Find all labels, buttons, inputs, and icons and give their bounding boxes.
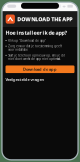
staticText: Veelgestelde vragen (5, 77, 44, 82)
staticText: Klik op “Download de app” (8, 39, 46, 42)
staticText: DOWNLOAD THE APP (17, 16, 72, 23)
button[interactable]: Download de app (5, 65, 74, 73)
staticText: Download de app (23, 67, 57, 72)
button[interactable]: DOWNLOAD THE APP (3, 11, 77, 27)
staticText: Hoe installeer ik de app? (5, 29, 67, 36)
button[interactable]: Veelgestelde vragen (5, 76, 44, 83)
staticText: Zorg ervoor dat je toestemming geeft voo… (8, 44, 62, 52)
staticText: Start je telefoon opnieuw op. Als je dit… (8, 54, 65, 61)
